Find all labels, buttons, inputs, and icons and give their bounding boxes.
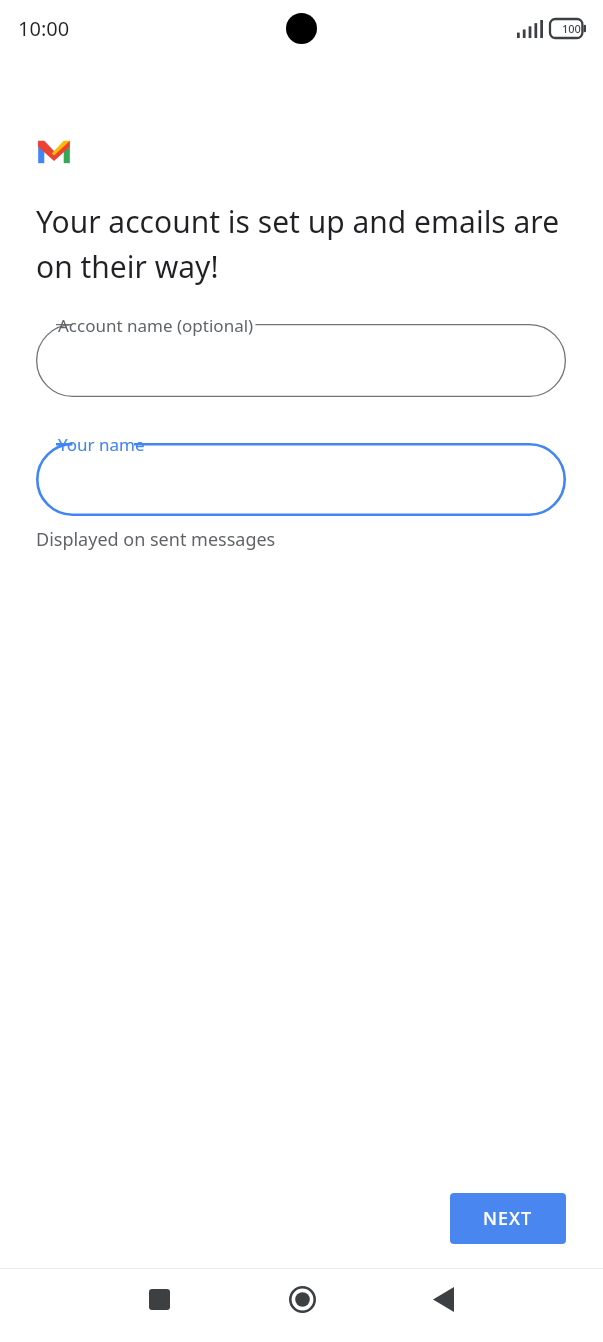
staticText: Displayed on sent messages — [36, 527, 276, 552]
button[interactable]: Back — [413, 1269, 473, 1329]
button[interactable]: Account name (optional) — [36, 311, 566, 397]
staticText: 100 — [562, 21, 581, 36]
button[interactable]: Your name — [36, 430, 566, 516]
button[interactable]: NEXT — [450, 1193, 566, 1244]
staticText: NEXT — [483, 1206, 533, 1231]
button[interactable]: Recent apps — [129, 1269, 189, 1329]
button[interactable]: Home — [272, 1269, 332, 1329]
staticText: Account name (optional) — [58, 314, 254, 337]
staticText: Your account is set up and emails are on… — [36, 201, 566, 287]
staticText: Your name — [58, 433, 145, 456]
staticText: 10:00 — [18, 15, 70, 42]
